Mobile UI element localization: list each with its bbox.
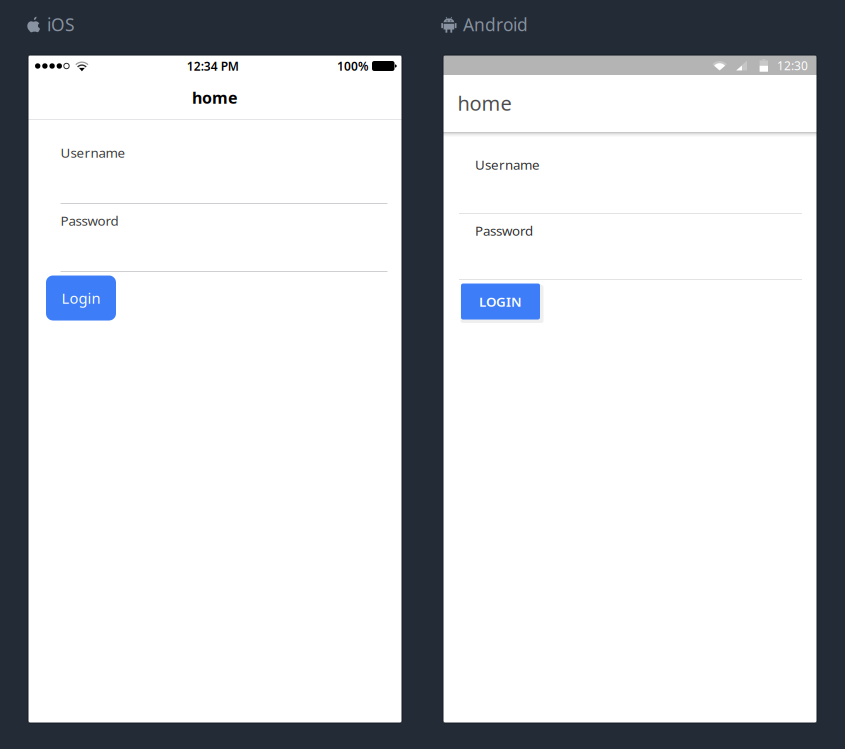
- staticText: 100%: [337, 58, 369, 74]
- staticText: LOGIN: [479, 293, 522, 310]
- staticText: iOS: [47, 13, 75, 36]
- button[interactable]: home: [28, 76, 402, 119]
- staticText: Password: [60, 212, 118, 229]
- staticText: home: [192, 87, 238, 108]
- staticText: Username: [475, 156, 540, 173]
- staticText: Username: [60, 144, 125, 161]
- button[interactable]: LOGIN: [461, 283, 540, 319]
- staticText: 12:30: [777, 57, 808, 73]
- staticText: Login: [61, 288, 100, 308]
- staticText: Android: [463, 13, 528, 36]
- staticText: Password: [475, 222, 533, 239]
- staticText: home: [457, 90, 511, 116]
- staticText: 12:34 PM: [187, 58, 239, 74]
- button[interactable]: Login: [46, 275, 116, 320]
